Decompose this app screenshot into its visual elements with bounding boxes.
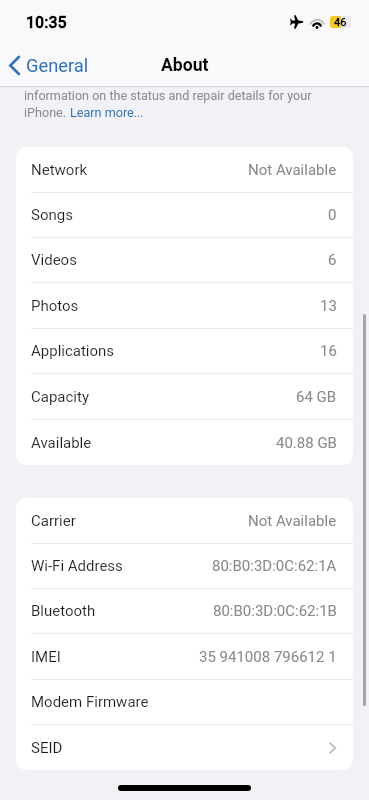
staticText: Photos: [31, 297, 79, 315]
button[interactable]: Songs: [16, 193, 353, 238]
button[interactable]: Capacity: [16, 374, 353, 420]
button[interactable]: Bluetooth: [16, 589, 353, 634]
staticText: Videos: [31, 251, 77, 269]
staticText: Bluetooth: [31, 602, 96, 620]
staticText: Network: [31, 161, 88, 179]
staticText: 80:B0:3D:0C:62:1B: [213, 602, 337, 620]
staticText: Capacity: [31, 388, 90, 406]
button[interactable]: SEID: [16, 725, 353, 770]
staticText: Songs: [31, 206, 73, 224]
staticText: Carrier: [31, 512, 76, 530]
button[interactable]: IMEI: [16, 634, 353, 680]
staticText: 16: [320, 342, 337, 360]
button[interactable]: Applications: [16, 329, 353, 374]
button[interactable]: Videos: [16, 238, 353, 283]
staticText: Not Available: [248, 161, 337, 179]
staticText: Wi-Fi Address: [31, 557, 123, 575]
staticText: IMEI: [31, 648, 61, 666]
button[interactable]: Network: [16, 147, 353, 193]
staticText: 64 GB: [296, 388, 337, 406]
staticText: information on the status and repair det…: [24, 88, 312, 103]
staticText: SEID: [31, 739, 63, 757]
staticText: iPhone.: [24, 105, 70, 120]
button[interactable]: Photos: [16, 283, 353, 329]
button[interactable]: Wi-Fi Address: [16, 544, 353, 589]
button[interactable]: General: [6, 51, 92, 80]
staticText: Applications: [31, 342, 115, 360]
staticText: 40.88 GB: [276, 434, 337, 452]
button[interactable]: Carrier: [16, 498, 353, 544]
staticText: Available: [31, 434, 92, 452]
staticText: 10:35: [26, 13, 67, 32]
staticText: About: [161, 55, 209, 76]
button[interactable]: Modem Firmware: [16, 680, 353, 725]
staticText: Modem Firmware: [31, 693, 149, 711]
button[interactable]: Available: [16, 420, 353, 465]
button[interactable]: Learn more...: [70, 105, 144, 120]
staticText: 35 941008 796612 1: [199, 648, 337, 666]
staticText: 13: [320, 297, 337, 315]
other: Wi-Fi: [310, 17, 324, 28]
staticText: 80:B0:3D:0C:62:1A: [212, 557, 337, 575]
staticText: Not Available: [248, 512, 337, 530]
staticText: General: [26, 55, 89, 76]
staticText: 0: [328, 206, 337, 224]
other: Airplane mode: [290, 15, 304, 29]
staticText: 46: [334, 16, 347, 28]
staticText: 6: [328, 251, 337, 269]
